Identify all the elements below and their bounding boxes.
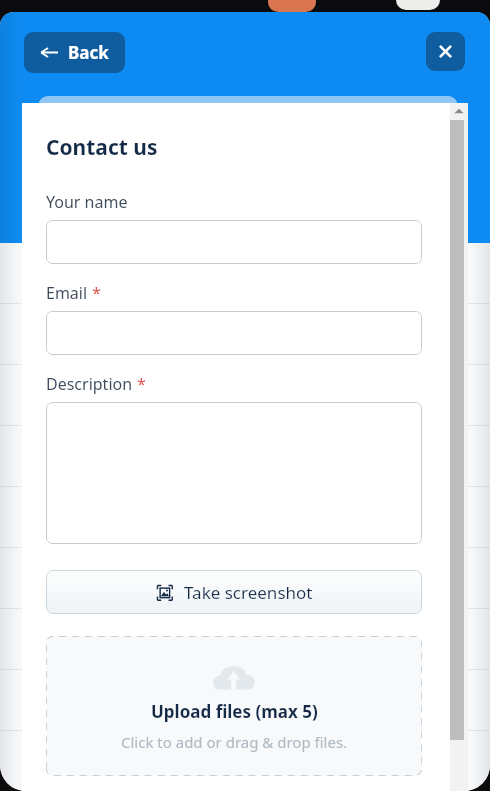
staticText: Email xyxy=(46,282,88,304)
staticText: Back xyxy=(68,41,109,64)
staticText: Take screenshot xyxy=(184,581,313,604)
staticText: Description xyxy=(46,373,133,395)
button[interactable] xyxy=(46,311,422,355)
button[interactable]: Take screenshot xyxy=(46,570,422,614)
button[interactable] xyxy=(46,402,422,544)
staticText: * xyxy=(137,373,146,395)
button[interactable]: Close xyxy=(426,32,465,71)
staticText: Your name xyxy=(46,191,128,213)
button[interactable]: Back xyxy=(24,32,125,73)
staticText: Upload files (max 5) xyxy=(151,700,318,723)
staticText: Click to add or drag & drop files. xyxy=(121,732,348,752)
button[interactable]: Upload files (max 5) xyxy=(46,636,422,776)
staticText: * xyxy=(92,282,101,304)
button[interactable] xyxy=(46,220,422,264)
staticText: Contact us xyxy=(46,133,158,162)
